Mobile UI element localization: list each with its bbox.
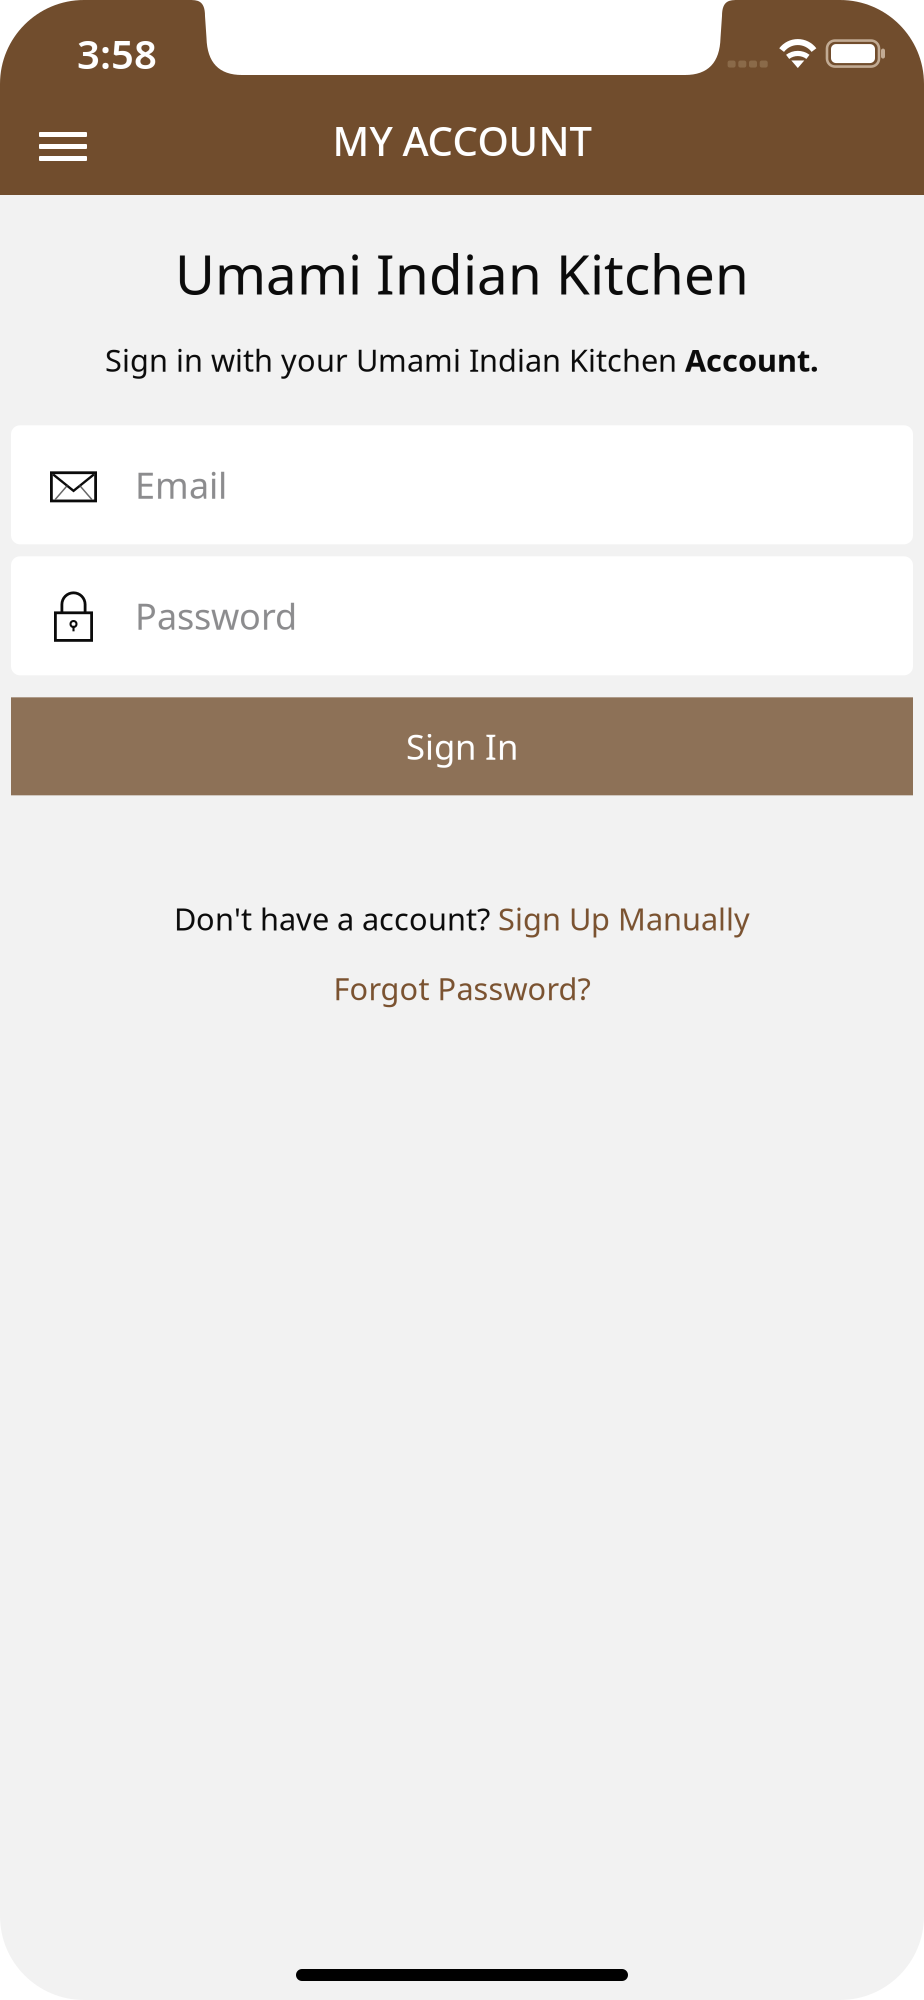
staticText: 3:58 — [77, 27, 157, 80]
staticText: Sign Up Manually — [498, 898, 750, 939]
staticText: Account. — [685, 340, 819, 380]
button[interactable]: Sign In — [11, 697, 913, 795]
button[interactable]: Password — [11, 556, 913, 675]
staticText: MY ACCOUNT — [332, 114, 591, 167]
button[interactable]: Sign Up Manually — [498, 898, 750, 939]
staticText: Sign in with your Umami Indian Kitchen — [105, 340, 685, 380]
staticText: Email — [135, 461, 227, 509]
button[interactable]: Email — [11, 425, 913, 544]
button[interactable]: Menu — [0, 92, 121, 195]
staticText: Sign In — [406, 723, 518, 769]
button[interactable]: Forgot Password? — [333, 968, 590, 1009]
staticText: Password — [135, 592, 297, 640]
staticText: Umami Indian Kitchen — [175, 237, 749, 310]
staticText: Forgot Password? — [333, 968, 590, 1009]
staticText: Don't have a account? — [174, 898, 498, 939]
